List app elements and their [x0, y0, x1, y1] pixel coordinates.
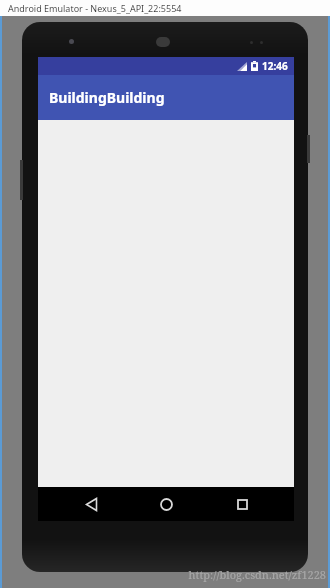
button[interactable]: Home — [143, 487, 189, 521]
staticText: 12:46 — [262, 59, 288, 73]
staticText: Android Emulator - Nexus_5_API_22:5554 — [8, 2, 182, 14]
button[interactable]: BuildingBuilding — [38, 75, 294, 120]
staticText: BuildingBuilding — [49, 88, 165, 107]
staticText: http://blog.csdn.net/zf1228 — [188, 567, 326, 582]
button[interactable]: Recent apps — [219, 487, 265, 521]
button[interactable]: Back — [68, 487, 114, 521]
